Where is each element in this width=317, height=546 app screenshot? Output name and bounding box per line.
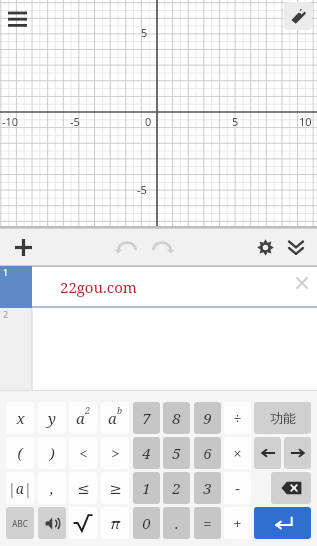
staticText: .: [175, 513, 179, 533]
button[interactable]: Settings: [250, 228, 280, 266]
staticText: π: [110, 513, 120, 533]
staticText: 3: [203, 478, 212, 498]
button[interactable]: ): [38, 437, 66, 469]
button[interactable]: Redo: [146, 228, 178, 266]
staticText: y: [48, 408, 56, 428]
button[interactable]: 4: [133, 437, 160, 469]
staticText: 0: [142, 513, 151, 533]
button[interactable]: a to the power b: [101, 402, 129, 434]
staticText: 功能: [270, 410, 296, 426]
button[interactable]: a squared: [69, 402, 97, 434]
staticText: -5: [137, 182, 147, 197]
staticText: 22gou.com: [60, 277, 137, 297]
staticText: 9: [203, 408, 212, 428]
button[interactable]: <: [69, 437, 97, 469]
staticText: =: [203, 513, 212, 533]
button[interactable]: 6: [194, 437, 221, 469]
button[interactable]: ,: [38, 472, 66, 504]
button[interactable]: 1: [0, 266, 317, 308]
button[interactable]: Graph settings: [284, 2, 312, 30]
staticText: 2: [85, 404, 91, 416]
staticText: -10: [2, 114, 19, 129]
staticText: ): [49, 443, 55, 463]
staticText: 1: [142, 478, 151, 498]
button[interactable]: Move right: [284, 437, 311, 469]
staticText: |a|: [8, 479, 32, 498]
staticText: ≤: [77, 480, 90, 497]
staticText: +: [233, 513, 242, 533]
staticText: 0: [145, 114, 152, 129]
staticText: 4: [142, 443, 151, 463]
staticText: 5: [141, 25, 148, 40]
staticText: (: [17, 443, 23, 463]
button[interactable]: Enter: [254, 507, 311, 539]
staticText: 5: [232, 114, 239, 129]
button[interactable]: Absolute value: [6, 472, 34, 504]
button[interactable]: y: [38, 402, 66, 434]
staticText: a: [108, 408, 117, 428]
staticText: >: [111, 443, 120, 463]
button[interactable]: 0: [133, 507, 160, 539]
staticText: 6: [203, 443, 212, 463]
staticText: b: [117, 404, 123, 416]
staticText: 7: [142, 408, 151, 428]
button[interactable]: Backspace: [271, 472, 311, 504]
staticText: ×: [233, 443, 242, 463]
button[interactable]: 功能: [254, 402, 311, 434]
staticText: 5: [172, 443, 181, 463]
button[interactable]: Collapse panel: [281, 228, 311, 266]
staticText: <: [79, 443, 88, 463]
staticText: ≥: [109, 480, 122, 497]
button[interactable]: Square root: [69, 507, 97, 539]
button[interactable]: .: [163, 507, 190, 539]
button[interactable]: Undo: [111, 228, 143, 266]
button[interactable]: (: [6, 437, 34, 469]
staticText: 1: [3, 266, 9, 278]
button[interactable]: ×: [224, 437, 251, 469]
button[interactable]: 5: [163, 437, 190, 469]
staticText: x: [16, 408, 25, 428]
staticText: ,: [50, 478, 54, 498]
staticText: ABC: [12, 518, 28, 529]
button[interactable]: x: [6, 402, 34, 434]
button[interactable]: Add expression: [4, 228, 42, 266]
staticText: -5: [70, 114, 80, 129]
button[interactable]: 7: [133, 402, 160, 434]
button[interactable]: >: [101, 437, 129, 469]
button[interactable]: 9: [194, 402, 221, 434]
staticText: a: [76, 408, 85, 428]
button[interactable]: 3: [194, 472, 221, 504]
staticText: 8: [172, 408, 181, 428]
button[interactable]: Menu: [5, 7, 31, 33]
button[interactable]: ABC: [6, 507, 34, 539]
button[interactable]: −: [224, 472, 251, 504]
button[interactable]: π: [101, 507, 129, 539]
staticText: 2: [3, 308, 9, 320]
button[interactable]: ÷: [224, 402, 251, 434]
button[interactable]: 2: [163, 472, 190, 504]
staticText: ÷: [233, 408, 242, 428]
button[interactable]: =: [194, 507, 221, 539]
button[interactable]: Move left: [254, 437, 281, 469]
button[interactable]: 8: [163, 402, 190, 434]
button[interactable]: Delete expression: [293, 274, 311, 292]
staticText: −: [235, 478, 240, 498]
button[interactable]: ≤: [69, 472, 97, 504]
button[interactable]: 1: [133, 472, 160, 504]
button[interactable]: ≥: [101, 472, 129, 504]
button[interactable]: +: [224, 507, 251, 539]
staticText: 2: [172, 478, 181, 498]
button[interactable]: Sound: [38, 507, 66, 539]
staticText: 10: [299, 114, 312, 129]
button[interactable]: 2: [0, 308, 317, 338]
